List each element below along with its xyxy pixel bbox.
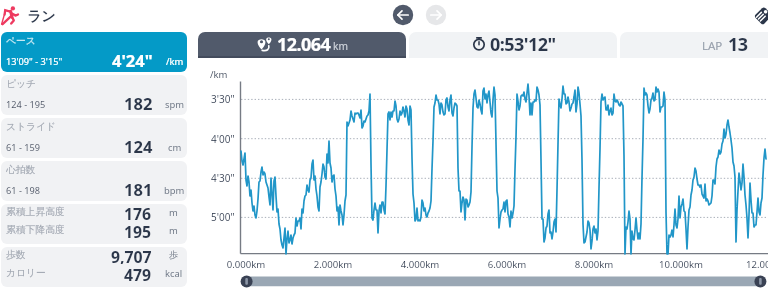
staticText: bpm — [164, 184, 185, 197]
button[interactable]: 0:53'12" — [409, 32, 617, 58]
staticText: 176 — [124, 204, 152, 221]
staticText: 61 - 198 — [6, 184, 41, 197]
staticText: 61 - 159 — [6, 141, 41, 154]
staticText: 181 — [124, 178, 153, 200]
button[interactable]: ピッチ — [1, 75, 187, 115]
button[interactable]: Next — [425, 4, 447, 26]
staticText: 182 — [124, 92, 153, 114]
staticText: 13'09" - 3'15" — [6, 55, 63, 68]
staticText: 124 — [124, 135, 153, 157]
staticText: cm — [168, 141, 182, 154]
staticText: 3'30" — [211, 92, 235, 106]
staticText: 2.000km — [303, 258, 363, 271]
staticText: spm — [165, 98, 185, 111]
staticText: 124 - 195 — [6, 98, 46, 111]
button[interactable]: 歩数 — [1, 247, 187, 287]
staticText: m — [169, 206, 178, 219]
button[interactable]: 12.064 — [198, 32, 406, 58]
staticText: 13 — [728, 32, 748, 57]
button[interactable]: LAP — [620, 32, 768, 58]
staticText: 累積下降高度 — [6, 224, 65, 236]
staticText: ラン — [27, 8, 56, 26]
staticText: 6.000km — [477, 258, 537, 271]
staticText: 8.000km — [564, 258, 624, 271]
staticText: 195 — [124, 221, 152, 239]
staticText: 歩数 — [6, 249, 26, 261]
staticText: 心拍数 — [6, 164, 36, 176]
staticText: kcal — [165, 267, 183, 280]
staticText: 4.000km — [390, 258, 450, 271]
button[interactable]: 心拍数 — [1, 161, 187, 201]
staticText: 歩 — [169, 249, 179, 261]
staticText: 4'00" — [211, 132, 235, 146]
staticText: 累積上昇高度 — [6, 206, 65, 218]
staticText: ストライド — [6, 121, 57, 133]
button[interactable]: Tags — [752, 3, 768, 27]
button[interactable]: ペース — [1, 32, 187, 72]
staticText: 479 — [124, 264, 152, 282]
staticText: /km — [210, 68, 228, 81]
staticText: 12.000km — [738, 258, 768, 271]
staticText: カロリー — [6, 267, 46, 279]
staticText: km — [333, 39, 348, 53]
staticText: 9,707 — [111, 247, 152, 264]
staticText: 0.000km — [216, 258, 276, 271]
staticText: 5'00" — [211, 210, 235, 224]
staticText: 10.000km — [651, 258, 711, 271]
staticText: 4'24" — [112, 49, 153, 71]
staticText: ピッチ — [6, 78, 37, 90]
staticText: ペース — [6, 35, 36, 47]
staticText: /km — [166, 55, 184, 68]
staticText: 0:53'12" — [490, 32, 556, 57]
staticText: m — [169, 224, 178, 237]
staticText: 4'30" — [211, 171, 235, 185]
button[interactable]: 累積上昇高度 — [1, 204, 187, 244]
staticText: 12.064 — [277, 32, 331, 57]
button[interactable]: ストライド — [1, 118, 187, 158]
button[interactable]: Previous — [392, 4, 414, 26]
staticText: LAP — [702, 38, 723, 54]
